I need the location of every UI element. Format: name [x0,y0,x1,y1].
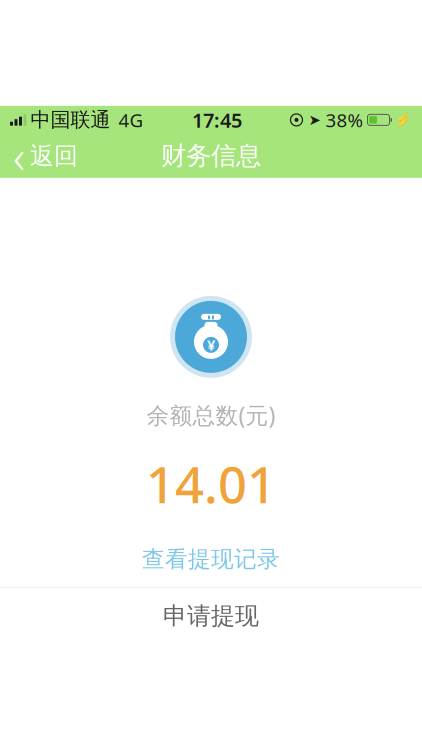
button[interactable]: ‹ [0,135,88,177]
staticText: 查看提现记录 [142,545,280,573]
staticText: 中国联通 [30,108,110,132]
staticText: ⚡ [394,111,412,128]
staticText: ‹ [13,126,25,186]
staticText: ➤ [308,112,320,128]
staticText: 17:45 [192,107,242,133]
button[interactable]: 申请提现 [0,588,422,644]
staticText: 4G [118,107,143,132]
button[interactable]: 查看提现记录 [132,539,290,579]
staticText: 申请提现 [163,601,259,631]
staticText: ¥ [207,335,215,355]
staticText: 返回 [30,141,78,171]
staticText: 财务信息 [161,140,261,171]
staticText: 14.01 [146,450,276,517]
staticText: 38% [325,107,363,132]
staticText: 余额总数(元) [146,400,275,430]
